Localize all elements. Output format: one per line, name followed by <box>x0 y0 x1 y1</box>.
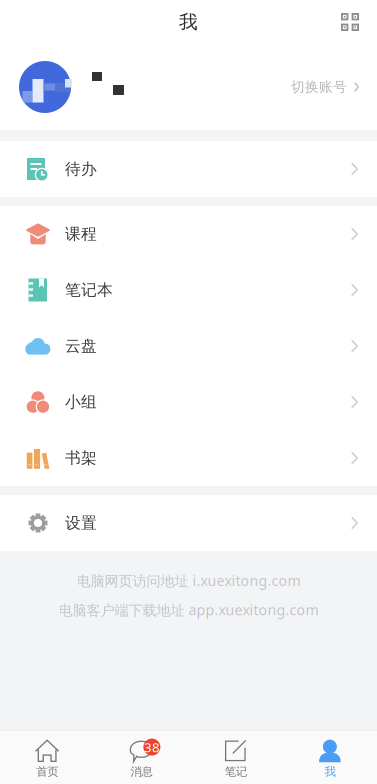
staticText: 消息 <box>130 765 152 779</box>
button[interactable]: 笔记 <box>188 731 283 784</box>
button[interactable]: Scan QR code <box>341 13 377 31</box>
staticText: 切换账号 <box>291 78 347 95</box>
staticText: 设置 <box>65 513 97 533</box>
button[interactable]: 书架 <box>0 430 377 486</box>
staticText: 电脑客户端下载地址 app.xuexitong.com <box>58 600 318 619</box>
staticText: 笔记本 <box>65 280 113 300</box>
staticText: 书架 <box>65 448 97 468</box>
staticText: 小组 <box>65 392 97 412</box>
button[interactable]: 小组 <box>0 374 377 430</box>
button[interactable]: 笔记本 <box>0 262 377 318</box>
button[interactable]: 切换账号 <box>0 44 377 130</box>
button[interactable]: 课程 <box>0 206 377 262</box>
staticText: 首页 <box>36 765 58 779</box>
staticText: 我 <box>179 10 198 34</box>
staticText: 待办 <box>65 159 97 179</box>
button[interactable]: 38 <box>94 731 188 784</box>
staticText: 38 <box>144 738 160 756</box>
button[interactable]: 设置 <box>0 495 377 551</box>
staticText: 电脑网页访问地址 i.xuexitong.com <box>76 571 300 590</box>
staticText: 笔记 <box>225 765 247 779</box>
button[interactable]: 我 <box>283 731 377 784</box>
staticText: 我 <box>324 765 335 779</box>
staticText: 云盘 <box>65 336 97 356</box>
button[interactable]: 首页 <box>0 731 94 784</box>
button[interactable]: 待办 <box>0 141 377 197</box>
staticText: 课程 <box>65 224 97 244</box>
button[interactable]: 云盘 <box>0 318 377 374</box>
